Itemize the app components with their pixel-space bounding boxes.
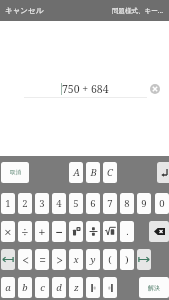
button[interactable]: × (1, 221, 15, 242)
button[interactable]: 取消 (1, 162, 29, 183)
button[interactable]: 3 (35, 193, 49, 214)
button[interactable]: C (103, 162, 117, 183)
button[interactable]: ( (103, 249, 117, 270)
staticText: 0 (159, 197, 165, 210)
staticText: × (4, 223, 12, 241)
button[interactable]: Move to end (137, 249, 151, 270)
button[interactable]: 問題様式、キー... (106, 2, 169, 19)
staticText: > (56, 252, 63, 268)
button[interactable]: 2 (18, 193, 32, 214)
staticText: + (38, 223, 46, 241)
staticText: . (126, 225, 129, 238)
button[interactable]: Cursor left (103, 277, 117, 298)
button[interactable]: Power (69, 221, 83, 242)
button[interactable]: . (120, 221, 134, 242)
staticText: キャンセル (5, 6, 44, 15)
button[interactable]: x (69, 249, 83, 270)
button[interactable]: a (1, 277, 15, 298)
button[interactable]: 解決 (139, 277, 169, 298)
staticText: ) (125, 253, 129, 266)
button[interactable]: 1 (1, 193, 15, 214)
staticText: 7 (107, 197, 113, 210)
button[interactable]: キャンセル (0, 2, 49, 19)
staticText: 取消 (10, 169, 21, 176)
other: Move to end (138, 256, 150, 263)
staticText: 1 (5, 197, 11, 210)
button[interactable]: Return (157, 162, 169, 183)
button[interactable]: 7 (103, 193, 117, 214)
other: Cursor left (106, 283, 115, 293)
button[interactable]: Clear (150, 84, 160, 94)
other: Cursor right (89, 283, 98, 293)
button[interactable]: Cursor right (86, 277, 100, 298)
staticText: d (56, 281, 62, 294)
staticText: y (90, 253, 96, 266)
staticText: 3 (39, 197, 45, 210)
staticText: A (73, 166, 80, 179)
staticText: 問題様式、キー... (112, 6, 163, 15)
other: Fraction (88, 226, 99, 237)
staticText: 解決 (148, 284, 160, 292)
staticText: = (39, 252, 46, 268)
button[interactable]: b (18, 277, 32, 298)
other: Backspace (154, 228, 165, 235)
staticText: B (90, 166, 97, 179)
button[interactable]: − (52, 221, 66, 242)
button[interactable]: B (86, 162, 100, 183)
button[interactable]: d (52, 277, 66, 298)
staticText: 6 (90, 197, 96, 210)
button[interactable]: Fraction (86, 221, 100, 242)
button[interactable]: + (35, 221, 49, 242)
staticText: ÷ (21, 223, 29, 241)
other: Move to start (2, 256, 14, 263)
staticText: 9 (141, 197, 147, 210)
other: Return (160, 168, 169, 177)
staticText: 2 (22, 197, 28, 210)
staticText: ( (108, 253, 112, 266)
button[interactable]: ) (120, 249, 134, 270)
other: Square root (105, 226, 116, 237)
other: Power (71, 226, 82, 237)
button[interactable]: y (86, 249, 100, 270)
staticText: 8 (124, 197, 130, 210)
staticText: 750 + 684 (62, 82, 109, 96)
button[interactable]: ÷ (18, 221, 32, 242)
staticText: C (107, 166, 113, 179)
staticText: x (73, 253, 79, 266)
button[interactable]: Square root (103, 221, 117, 242)
button[interactable]: Move to start (1, 249, 15, 270)
staticText: b (22, 281, 28, 294)
staticText: 5 (73, 197, 79, 210)
button[interactable]: 9 (137, 193, 151, 214)
button[interactable]: z (69, 277, 83, 298)
staticText: 4 (56, 197, 62, 210)
button[interactable]: 5 (69, 193, 83, 214)
button[interactable]: < (18, 249, 32, 270)
button[interactable]: = (35, 249, 49, 270)
staticText: − (55, 223, 63, 241)
button[interactable]: Backspace (149, 221, 169, 242)
button[interactable]: 4 (52, 193, 66, 214)
staticText: a (5, 281, 11, 294)
button[interactable]: A (69, 162, 83, 183)
staticText: c (40, 281, 45, 294)
button[interactable]: 6 (86, 193, 100, 214)
button[interactable]: 0 (155, 193, 169, 214)
button[interactable]: c (35, 277, 49, 298)
staticText: z (74, 281, 79, 294)
button[interactable]: 8 (120, 193, 134, 214)
staticText: < (22, 252, 29, 268)
button[interactable]: > (52, 249, 66, 270)
